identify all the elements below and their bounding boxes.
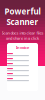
staticText: Scan docs into clear files bbox=[1, 30, 43, 35]
staticText: Invoice bbox=[16, 45, 29, 50]
staticText: Scanner bbox=[6, 17, 38, 27]
staticText: Powerful bbox=[4, 6, 40, 17]
staticText: and share in a click bbox=[6, 36, 39, 41]
